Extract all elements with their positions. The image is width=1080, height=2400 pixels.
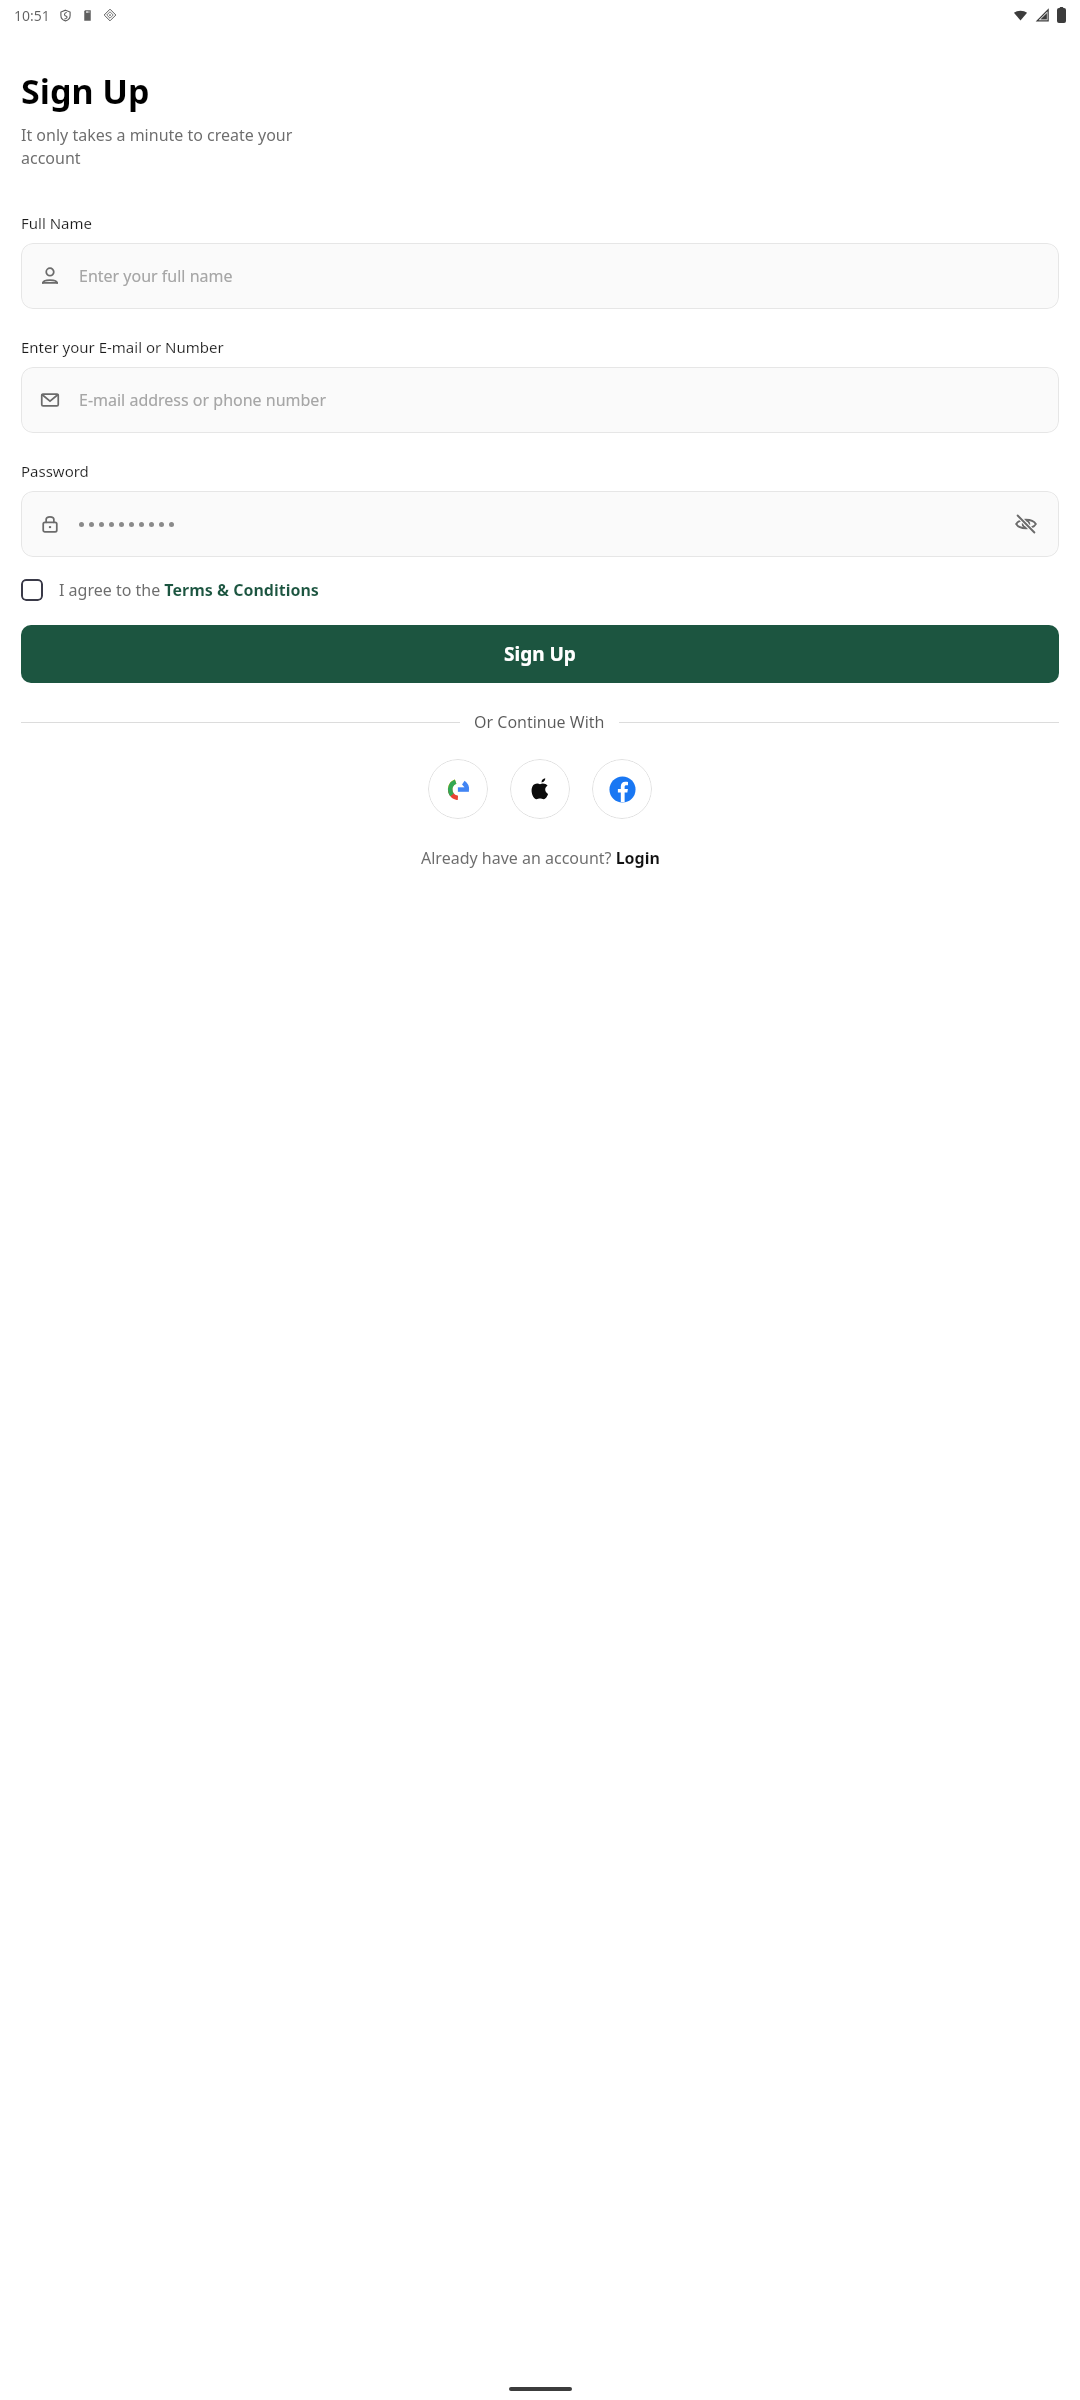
button[interactable]: Show password: [1011, 509, 1041, 539]
button[interactable]: Sign up with Apple: [510, 759, 570, 819]
staticText: Enter your E-mail or Number: [21, 337, 224, 357]
staticText: Or Continue With: [474, 711, 605, 733]
staticText: I agree to the Terms & Conditions: [59, 579, 319, 601]
button[interactable]: Enter your full name: [21, 243, 1059, 309]
staticText: Sign Up: [21, 68, 150, 114]
button[interactable]: Sign up with Facebook: [592, 759, 652, 819]
staticText: Full Name: [21, 213, 92, 233]
staticText: 10:51: [14, 6, 50, 25]
staticText: It only takes a minute to create your ac…: [21, 124, 293, 169]
button[interactable]: Sign Up: [21, 625, 1059, 683]
button[interactable]: Sign up with Google: [428, 759, 488, 819]
staticText: Already have an account? Login: [421, 847, 660, 869]
button[interactable]: Already have an account? Login: [421, 847, 660, 869]
button[interactable]: I agree to the Terms & Conditions: [21, 579, 1059, 601]
staticText: E-mail address or phone number: [79, 389, 326, 411]
button[interactable]: Show password: [21, 491, 1059, 557]
staticText: Sign Up: [504, 641, 576, 667]
button[interactable]: E-mail address or phone number: [21, 367, 1059, 433]
staticText: Enter your full name: [79, 265, 233, 287]
staticText: Password: [21, 461, 89, 481]
